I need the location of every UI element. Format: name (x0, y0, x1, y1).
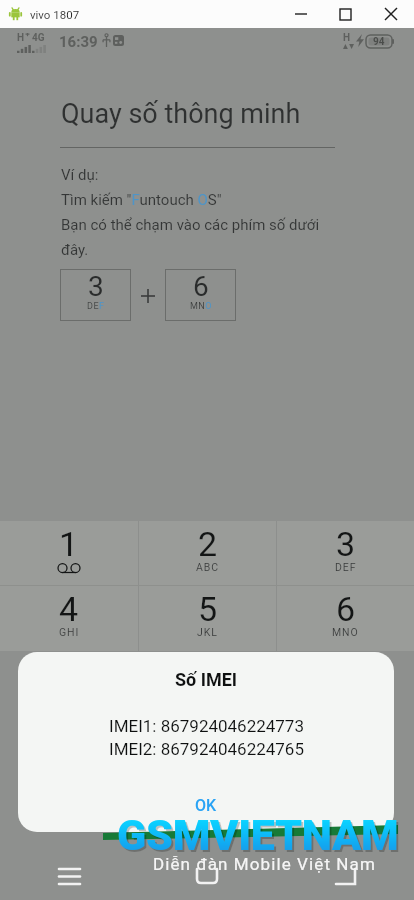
staticText: Số IMEI (175, 669, 238, 690)
button[interactable]: Home (179, 852, 235, 900)
button[interactable]: Back (317, 852, 373, 900)
staticText: GHI (59, 626, 80, 638)
button[interactable]: 5 (139, 586, 276, 651)
staticText: DEF (335, 561, 357, 573)
button[interactable]: Maximize (323, 0, 368, 28)
button[interactable]: 4 (0, 586, 138, 651)
staticText: GSMVIETNAM (119, 812, 401, 862)
staticText: MNO (190, 301, 212, 312)
button[interactable]: 2 (139, 521, 276, 585)
staticText: MNO (332, 626, 359, 638)
button[interactable]: Recent apps (41, 852, 97, 900)
staticText: 3 (88, 270, 104, 303)
staticText: 1 (59, 524, 79, 564)
staticText: GSMVIETNAM (117, 810, 399, 860)
staticText: DEF (87, 301, 105, 312)
button[interactable]: 3 (277, 521, 414, 585)
staticText: OK (195, 796, 217, 815)
staticText: 5 (198, 589, 218, 629)
staticText: JKL (197, 626, 218, 638)
button[interactable]: 6 (165, 269, 236, 321)
button[interactable]: 1 (0, 521, 138, 585)
staticText: vivo 1807 (30, 8, 80, 21)
staticText: Diễn đàn Mobile Việt Nam (153, 854, 376, 874)
staticText: 3 (336, 524, 356, 564)
staticText: Ví dụ: Tìm kiếm "Funtouch OS" Bạn có thể… (61, 166, 320, 258)
staticText: IMEI1: 867924046224773 IMEI2: 8679240462… (109, 716, 304, 759)
button[interactable]: Close (368, 0, 414, 28)
staticText: 6 (336, 589, 356, 629)
button[interactable]: 3 (60, 269, 131, 321)
staticText: ABC (196, 561, 219, 573)
staticText: 6 (193, 270, 209, 303)
button[interactable]: 6 (277, 586, 414, 651)
staticText: 4G (32, 32, 45, 44)
staticText: 94 (373, 36, 385, 48)
staticText: 2 (198, 524, 218, 564)
button[interactable]: OK (18, 789, 394, 821)
staticText: H (17, 32, 25, 44)
staticText: 4 (59, 589, 79, 629)
staticText: 16:39 (59, 33, 98, 51)
staticText: Quay số thông minh (61, 98, 301, 130)
button[interactable]: Minimize (278, 0, 323, 28)
staticText: H (343, 32, 351, 44)
